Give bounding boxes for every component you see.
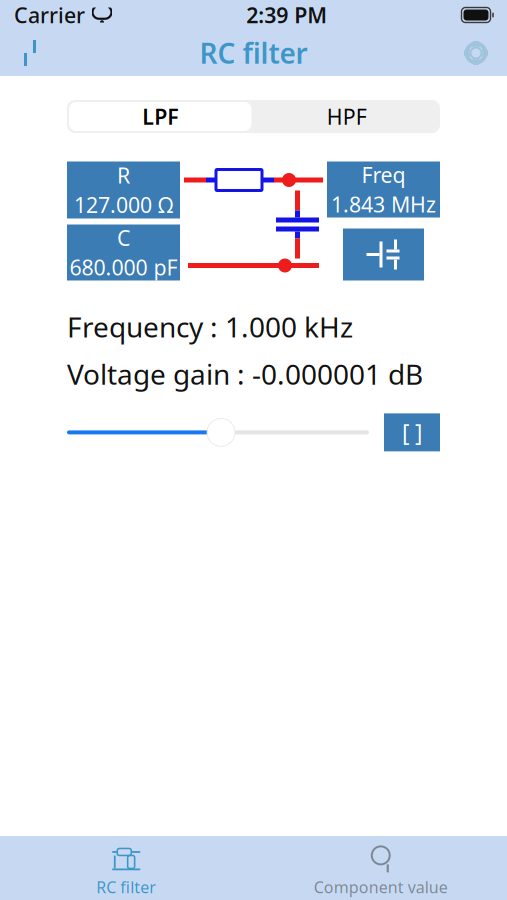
staticText: C — [117, 224, 130, 252]
staticText: LPF — [142, 102, 178, 131]
staticText: 680.000 pF — [69, 253, 177, 281]
staticText: 1.843 MHz — [331, 190, 436, 218]
button[interactable]: Transistor — [343, 228, 424, 280]
button[interactable]: C — [67, 224, 180, 280]
button[interactable]: Component value — [253, 838, 507, 898]
staticText: Freq — [361, 161, 405, 189]
button[interactable]: HPF — [253, 100, 440, 133]
staticText: Frequency : 1.000 kHz — [67, 308, 353, 345]
staticText: Component value — [314, 876, 448, 898]
staticText: R — [117, 161, 130, 189]
button[interactable]: RC filter — [0, 838, 253, 898]
button[interactable]: LPF — [67, 100, 253, 133]
button[interactable]: Settings — [454, 31, 498, 75]
staticText: 127.000 Ω — [74, 190, 173, 219]
button[interactable]: Freq — [327, 161, 440, 217]
staticText: RC filter — [96, 876, 156, 898]
button[interactable]: Units — [384, 413, 440, 451]
staticText: 2:39 PM — [246, 1, 327, 29]
button[interactable]: R — [67, 161, 180, 218]
staticText: HPF — [327, 102, 367, 131]
staticText: Voltage gain : -0.000001 dB — [67, 355, 423, 392]
staticText: Carrier — [14, 1, 85, 29]
staticText: RC filter — [199, 34, 307, 72]
button[interactable]: Back — [9, 31, 51, 75]
staticText: [ ] — [402, 417, 422, 447]
